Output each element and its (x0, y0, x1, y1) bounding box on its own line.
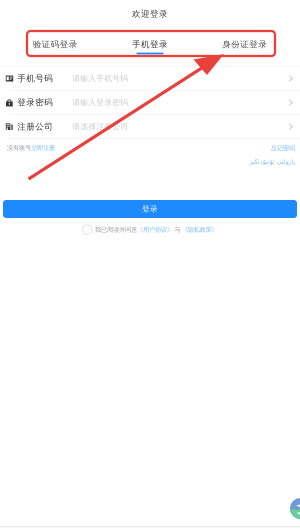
button[interactable]: 登录 (3, 200, 297, 218)
staticText: 手机号码 (17, 73, 53, 84)
button[interactable]: 手机登录 (103, 36, 197, 57)
button[interactable]: 没有账号 (7, 144, 55, 152)
button[interactable]: 登录密码 (0, 91, 300, 114)
staticText: 身份证登录 (222, 39, 267, 50)
staticText: 登录密码 (17, 97, 53, 108)
staticText: 忘记密码 (271, 144, 295, 152)
staticText: 请输入手机号码 (72, 73, 128, 83)
button[interactable]: 验证码登录 (8, 36, 103, 57)
button[interactable]: 手机号码 (0, 67, 300, 90)
staticText: 欢迎登录 (132, 9, 168, 19)
button[interactable]: پارولنى ئۇنتۇدىڭىز (249, 158, 295, 165)
staticText: 手机登录 (132, 39, 168, 50)
button[interactable]: 忘记密码 (271, 144, 295, 152)
staticText: پارولنى ئۇنتۇدىڭىز (249, 158, 295, 165)
button[interactable]: 注册公司 (0, 115, 300, 138)
button[interactable]: 我已阅读并同意 (83, 225, 217, 234)
staticText: 登录 (142, 204, 158, 214)
button[interactable]: 身份证登录 (197, 36, 292, 57)
staticText: 注册公司 (17, 121, 53, 132)
staticText: 《用户协议》 (137, 226, 173, 234)
staticText: 我已阅读并同意 (95, 226, 137, 234)
staticText: 《隐私政策》 (181, 226, 217, 234)
staticText: 验证码登录 (33, 39, 78, 50)
staticText: 请选择注册公司 (72, 122, 128, 131)
staticText: 没有账号 (7, 144, 31, 152)
staticText: 与 (174, 226, 180, 234)
staticText: 请输入登录密码 (72, 97, 128, 107)
staticText: 立即注册 (31, 144, 55, 152)
